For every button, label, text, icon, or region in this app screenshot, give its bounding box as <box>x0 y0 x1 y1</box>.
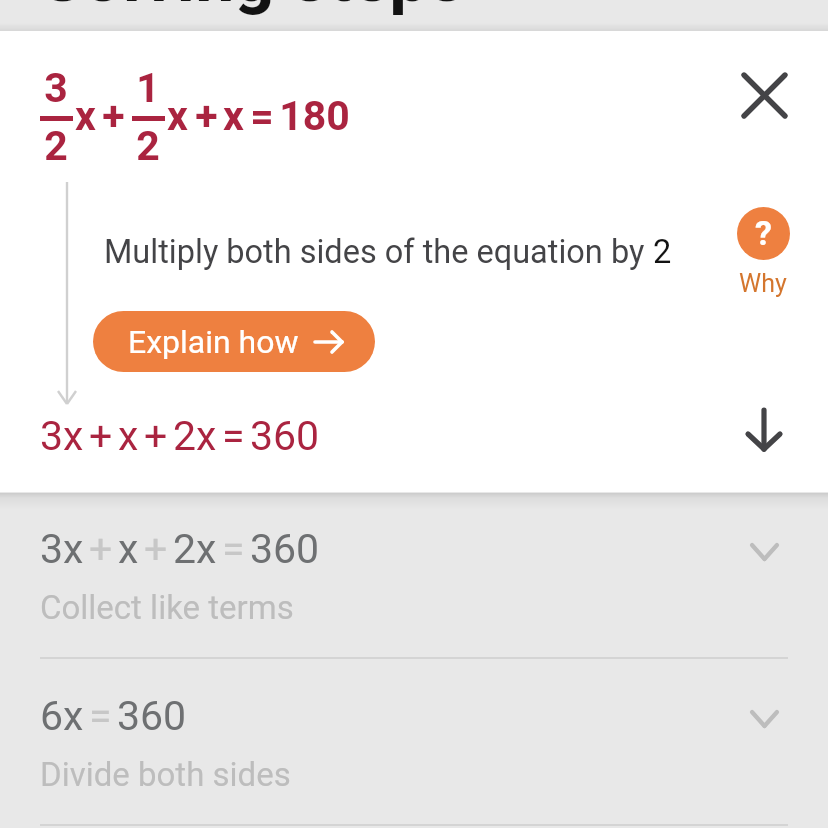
staticText: + <box>89 525 113 573</box>
staticText: Collect like terms <box>40 588 294 627</box>
staticText: ? <box>755 213 772 253</box>
staticText: Solving steps <box>40 0 465 18</box>
staticText: 360 <box>250 412 320 460</box>
staticText: + <box>102 92 125 140</box>
staticText: Explain how <box>128 323 299 361</box>
staticText: = <box>250 92 274 140</box>
button[interactable]: Next step <box>722 388 806 472</box>
staticText: 6x <box>40 692 84 740</box>
button[interactable]: Explain how <box>93 311 375 372</box>
button[interactable]: 3x <box>0 492 828 657</box>
staticText: + <box>144 525 168 573</box>
staticText: = <box>222 525 245 573</box>
staticText: 3 <box>44 64 68 112</box>
staticText: = <box>89 692 112 740</box>
staticText: 2 <box>136 122 160 170</box>
staticText: x <box>75 92 96 140</box>
staticText: 3x <box>40 525 84 573</box>
staticText: 3x <box>40 412 84 460</box>
staticText: 2x <box>173 525 217 573</box>
staticText: 1 <box>136 64 160 112</box>
button[interactable]: Close <box>722 53 806 137</box>
staticText: x <box>118 525 139 573</box>
staticText: Multiply both sides of the equation by <box>104 233 653 271</box>
button[interactable]: ? <box>723 207 803 298</box>
staticText: 360 <box>117 692 187 740</box>
staticText: 360 <box>250 525 320 573</box>
staticText: 2x <box>173 412 217 460</box>
staticText: 2 <box>653 233 672 271</box>
staticText: = <box>222 412 245 460</box>
staticText: Why <box>739 269 787 298</box>
staticText: + <box>89 412 113 460</box>
staticText: + <box>195 92 218 140</box>
staticText: x <box>223 92 244 140</box>
staticText: Divide both sides <box>40 755 291 794</box>
staticText: 180 <box>279 92 350 140</box>
button[interactable]: 6x <box>0 659 828 824</box>
staticText: x <box>167 92 188 140</box>
staticText: + <box>144 412 168 460</box>
staticText: x <box>118 412 139 460</box>
staticText: 2 <box>44 122 68 170</box>
